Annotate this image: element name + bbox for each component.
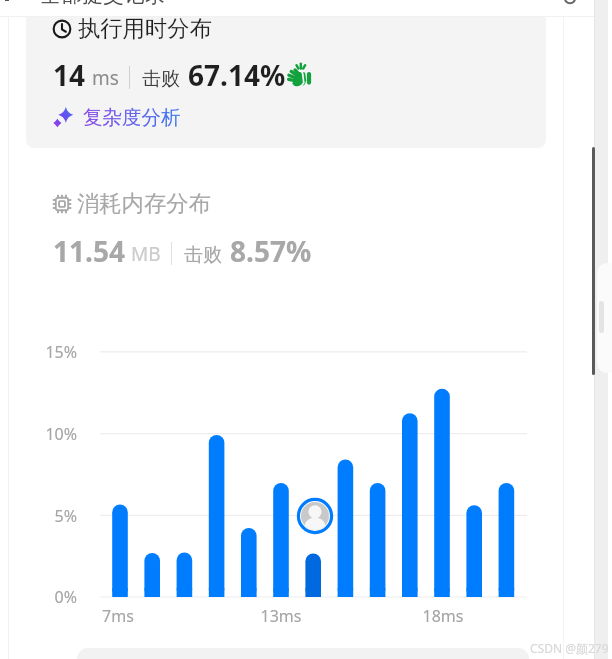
button[interactable]: 执行用时分布 [26,10,546,148]
staticText: 13ms [241,605,321,659]
staticText: 7ms [78,605,158,659]
staticText: 执行用时分布 [78,15,212,43]
button[interactable]: 复杂度分析 [52,105,181,130]
staticText: 8.57% [230,232,312,270]
staticText: CSDN @颜279 [530,640,609,656]
staticText: 67.14% [188,56,286,94]
staticText: 击败 [142,67,180,91]
staticText: 5% [18,505,77,659]
button[interactable]: 全部提交记录 [40,0,166,8]
staticText: 15% [18,341,77,659]
button[interactable]: More [564,0,576,4]
staticText: 0% [18,586,77,659]
staticText: 消耗内存分布 [77,190,211,218]
staticText: 击败 [184,243,222,267]
staticText: 10% [18,423,77,659]
staticText: 14 [53,56,86,94]
staticText: ms [92,65,119,91]
staticText: 18ms [403,605,483,659]
button[interactable] [296,497,334,535]
staticText: 复杂度分析 [83,105,181,130]
staticText: MB [131,241,161,267]
staticText: 11.54 [53,232,125,270]
